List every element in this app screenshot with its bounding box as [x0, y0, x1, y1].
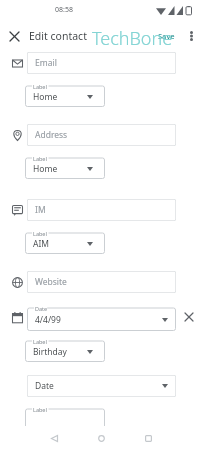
staticText: Home — [33, 163, 58, 175]
staticText: AIM — [33, 238, 50, 250]
staticText: 4/4/99 — [35, 314, 61, 326]
button[interactable]: IM — [27, 199, 176, 221]
staticText: Email — [35, 57, 57, 69]
staticText: Home — [33, 91, 58, 103]
staticText: Label — [33, 230, 47, 237]
staticText: Website — [35, 276, 67, 288]
staticText: Edit contact — [29, 29, 87, 43]
button[interactable]: Label — [25, 153, 105, 179]
button[interactable]: Recents — [125, 426, 172, 450]
button[interactable]: Date — [27, 303, 176, 331]
button[interactable]: Website — [27, 271, 176, 293]
staticText: 08:58 — [55, 5, 73, 15]
other: Email — [6, 52, 28, 74]
button[interactable]: Label — [25, 228, 105, 254]
staticText: Label — [33, 338, 47, 345]
staticText: TechBone — [92, 26, 173, 51]
button[interactable]: Email — [27, 52, 176, 74]
staticText: Birthday — [33, 346, 67, 358]
staticText: Date — [35, 305, 48, 312]
staticText: Label — [33, 406, 47, 413]
staticText: Save — [158, 31, 175, 41]
button[interactable]: More options — [181, 26, 201, 46]
button[interactable]: Home — [78, 426, 125, 450]
other: Address — [6, 124, 28, 146]
button[interactable]: Close — [4, 26, 24, 46]
staticText: Label — [33, 155, 47, 162]
other: Date — [6, 306, 28, 328]
staticText: Address — [35, 129, 68, 141]
button[interactable]: Label — [25, 336, 105, 362]
button[interactable]: Save — [152, 25, 180, 47]
staticText: Date — [35, 380, 54, 392]
button[interactable]: Date — [27, 375, 176, 397]
staticText: Label — [33, 83, 47, 90]
button[interactable]: Label — [25, 81, 105, 107]
button[interactable]: Delete date — [180, 308, 198, 326]
button[interactable]: Label — [25, 404, 105, 430]
button[interactable]: Address — [27, 124, 176, 146]
other: IM — [6, 199, 28, 221]
button[interactable]: Back — [30, 426, 78, 450]
other: Website — [6, 271, 28, 293]
staticText: IM — [35, 204, 46, 216]
